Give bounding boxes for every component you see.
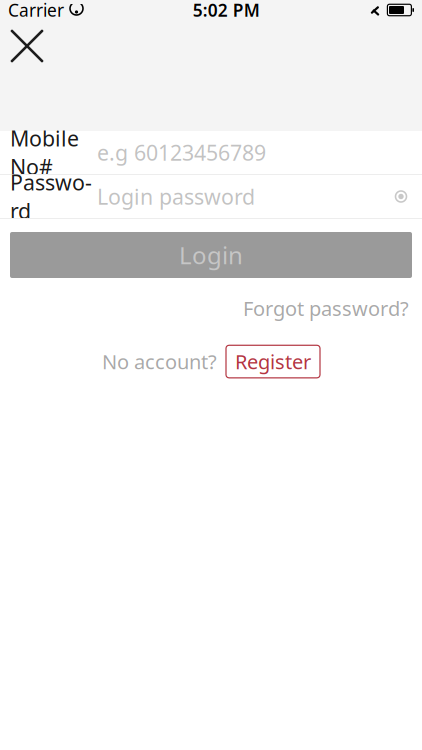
staticText: No account? xyxy=(102,348,217,375)
button[interactable]: Mobile No# xyxy=(0,131,422,174)
staticText: 5:02 PM xyxy=(193,0,260,21)
staticText: Mobile No# xyxy=(10,124,79,181)
staticText: Forgot password? xyxy=(243,295,409,322)
staticText: Login password xyxy=(97,182,255,211)
button[interactable]: Close xyxy=(0,24,54,68)
staticText: Register xyxy=(235,348,311,375)
button[interactable]: Login xyxy=(10,232,412,278)
button[interactable]: Forgot password? xyxy=(241,289,411,328)
staticText: e.g 60123456789 xyxy=(97,138,266,167)
button[interactable]: Register xyxy=(226,345,320,378)
staticText: Password xyxy=(10,168,92,225)
staticText: Carrier xyxy=(8,0,64,21)
button[interactable]: Password xyxy=(0,175,422,218)
staticText: Login xyxy=(179,239,243,271)
